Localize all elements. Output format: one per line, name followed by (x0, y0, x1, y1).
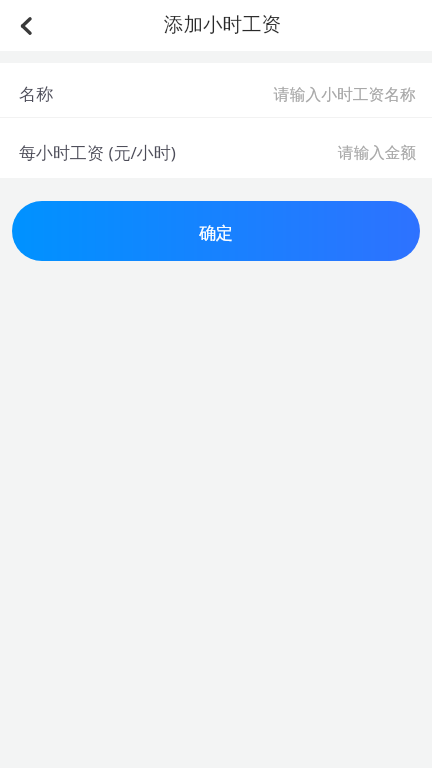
button[interactable]: 确定 (12, 201, 420, 261)
staticText: 每小时工资 (元/小时) (19, 141, 176, 164)
staticText: 请输入小时工资名称 (273, 85, 416, 105)
staticText: 请输入金额 (338, 143, 416, 163)
button[interactable]: Back (0, 0, 52, 51)
button[interactable]: 每小时工资 (元/小时) (0, 118, 432, 178)
staticText: 名称 (19, 84, 53, 105)
staticText: 添加小时工资 (164, 12, 281, 37)
button[interactable]: 名称 (0, 63, 432, 117)
staticText: 确定 (199, 223, 233, 244)
